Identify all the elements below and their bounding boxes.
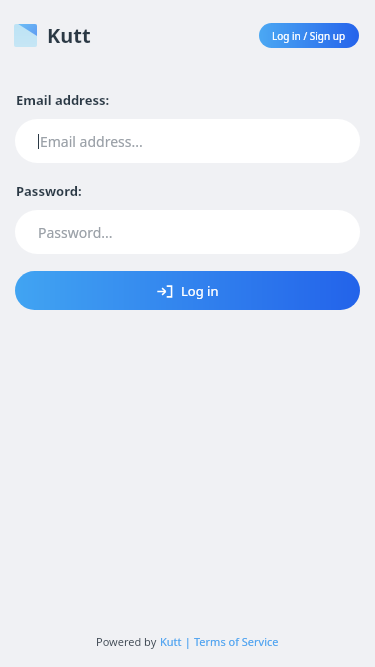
staticText: Log in / Sign up bbox=[272, 29, 346, 43]
button[interactable]: Log in bbox=[15, 271, 360, 310]
staticText: Email address... bbox=[40, 132, 143, 151]
staticText: | bbox=[182, 634, 194, 649]
button[interactable]: Terms of Service bbox=[194, 634, 279, 649]
staticText: Kutt bbox=[160, 634, 182, 649]
staticText: Email address: bbox=[16, 91, 110, 109]
staticText: Terms of Service bbox=[194, 634, 279, 649]
staticText: Password... bbox=[38, 223, 113, 242]
button[interactable]: Password... bbox=[15, 210, 360, 254]
other: Log in bbox=[157, 284, 172, 299]
button[interactable]: Kutt bbox=[160, 634, 182, 649]
button[interactable]: Log in / Sign up bbox=[259, 23, 359, 48]
button[interactable]: Email address... bbox=[15, 119, 360, 163]
staticText: Log in bbox=[181, 282, 219, 300]
staticText: Password: bbox=[16, 182, 82, 200]
staticText: Powered by bbox=[96, 634, 160, 649]
staticText: Kutt bbox=[47, 22, 91, 49]
